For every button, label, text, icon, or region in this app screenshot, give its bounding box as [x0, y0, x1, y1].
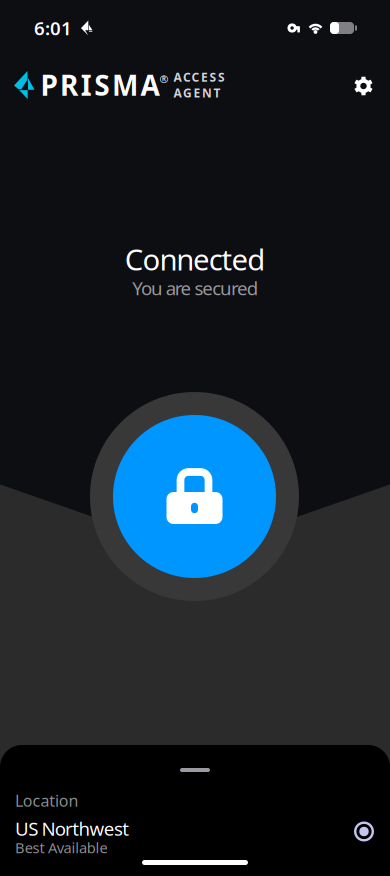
button[interactable]: Settings [342, 64, 385, 107]
button[interactable]: Disconnect [90, 392, 299, 601]
staticText: 6:01 [34, 16, 72, 40]
staticText: Location [15, 790, 79, 811]
staticText: PRISMA [40, 66, 159, 104]
staticText: Connected [125, 239, 265, 278]
staticText: ACCESS [173, 69, 225, 85]
staticText: Best Available [15, 838, 107, 857]
staticText: US Northwest [15, 816, 129, 841]
button[interactable]: Location [0, 793, 390, 869]
staticText: You are secured [132, 276, 258, 300]
staticText: ® [159, 72, 168, 86]
staticText: AGENT [173, 85, 220, 101]
